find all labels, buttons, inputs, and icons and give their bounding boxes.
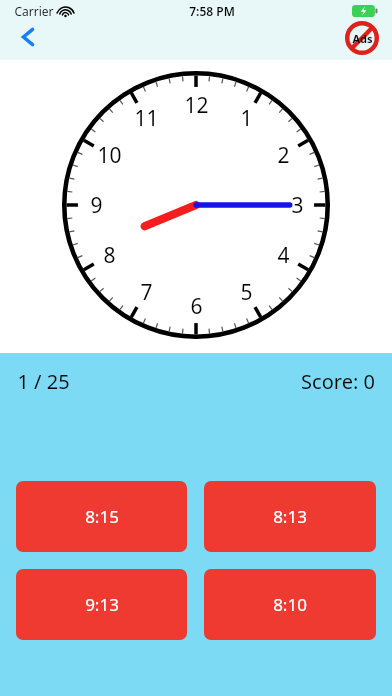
staticText: 11	[134, 104, 159, 133]
button[interactable]: 9:13	[16, 569, 187, 640]
button[interactable]: Remove ads	[342, 18, 382, 58]
staticText: 4	[277, 241, 290, 270]
staticText: Ads	[352, 31, 373, 46]
button[interactable]: 8:13	[204, 481, 376, 552]
button[interactable]: 8:10	[204, 569, 376, 640]
button[interactable]: Back	[10, 18, 48, 56]
staticText: 3	[291, 191, 304, 220]
staticText: 2	[277, 141, 290, 170]
staticText: 9	[90, 191, 103, 220]
staticText: 8	[103, 241, 116, 270]
staticText: 1 / 25	[17, 368, 70, 395]
staticText: 10	[97, 141, 122, 170]
staticText: 8:15	[85, 505, 119, 528]
staticText: Carrier	[14, 3, 54, 19]
staticText: 5	[240, 278, 253, 307]
staticText: 7	[140, 278, 153, 307]
staticText: 8:13	[273, 505, 307, 528]
staticText: 7:58 PM	[189, 3, 235, 19]
staticText: 9:13	[85, 593, 119, 616]
button[interactable]: 8:15	[16, 481, 187, 552]
staticText: 6	[190, 292, 203, 321]
staticText: 1	[240, 104, 253, 133]
staticText: 12	[184, 91, 209, 120]
staticText: 8:10	[273, 593, 307, 616]
staticText: Score: 0	[301, 368, 375, 395]
